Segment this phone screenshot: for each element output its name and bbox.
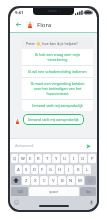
button[interactable]: U	[61, 154, 69, 163]
button[interactable]: H	[56, 165, 64, 174]
staticText: F	[41, 167, 44, 173]
button[interactable]: A	[15, 165, 22, 174]
staticText: U	[63, 156, 67, 162]
button[interactable]: Go	[80, 187, 96, 196]
staticText: space	[49, 189, 59, 194]
button[interactable]: T	[43, 154, 51, 163]
button[interactable]: Emoji	[13, 199, 19, 205]
staticText: T	[46, 156, 49, 162]
staticText: Flora	[37, 21, 52, 29]
staticText: J	[68, 167, 70, 173]
button[interactable]: Z	[22, 176, 30, 185]
staticText: C	[43, 178, 46, 184]
staticText: E	[29, 156, 32, 162]
staticText: A	[17, 167, 20, 173]
button[interactable]: Q	[11, 154, 18, 163]
staticText: H	[58, 167, 62, 173]
staticText: 123	[17, 189, 23, 194]
button[interactable]: W	[19, 154, 26, 163]
button[interactable]: X	[31, 176, 39, 185]
button[interactable]: Y	[52, 154, 60, 163]
staticText: B	[61, 178, 64, 184]
staticText: V	[52, 178, 55, 184]
staticText: P	[91, 156, 94, 162]
button[interactable]: C	[40, 176, 48, 185]
staticText: N	[69, 178, 73, 184]
button[interactable]: R	[35, 154, 42, 163]
staticText: Q	[13, 156, 17, 162]
button[interactable]: Dictate	[88, 199, 94, 205]
button[interactable]: space	[29, 187, 79, 196]
button[interactable]: Shift	[11, 176, 21, 185]
staticText: Y	[55, 156, 58, 162]
button[interactable]: Iemand stelt mij aansprakelijk	[22, 100, 93, 111]
staticText: K	[77, 167, 80, 173]
button[interactable]: M	[76, 176, 84, 185]
button[interactable]: E	[27, 154, 34, 163]
button[interactable]: J	[65, 165, 73, 174]
button[interactable]: B	[58, 176, 66, 185]
staticText: I	[73, 156, 75, 162]
button[interactable]: N	[67, 176, 75, 185]
staticText: Antwoord	[15, 143, 84, 148]
staticText: Ik heb een vraag over mijn verzekering	[35, 52, 80, 62]
staticText: Iemand stelt mij aansprakelijk	[28, 117, 79, 122]
button[interactable]: K	[74, 165, 82, 174]
button[interactable]: P	[88, 154, 96, 163]
staticText: Iemand stelt mij aansprakelijk	[32, 103, 83, 108]
staticText: Z	[25, 178, 28, 184]
staticText: L	[86, 167, 89, 173]
button[interactable]: 123	[11, 187, 28, 196]
button[interactable]: G	[47, 165, 55, 174]
button[interactable]: F	[39, 165, 46, 174]
staticText: S	[25, 167, 28, 173]
button[interactable]: L	[83, 165, 91, 174]
staticText: Peter 👋, hoe kan ik je helpen?	[26, 41, 78, 46]
button[interactable]: V	[49, 176, 57, 185]
staticText: D	[33, 167, 37, 173]
staticText: X	[34, 178, 37, 184]
button[interactable]: I	[70, 154, 78, 163]
staticText: R	[37, 156, 40, 162]
staticText: O	[81, 156, 85, 162]
staticText: 9:41	[15, 10, 24, 16]
button[interactable]: Ik wil een schademelding indienen	[22, 66, 93, 77]
button[interactable]: S	[23, 165, 30, 174]
staticText: W	[21, 156, 25, 162]
button[interactable]: Ik moet een vergoeding betalen voor het …	[22, 78, 93, 99]
button[interactable]: Send	[84, 142, 92, 150]
button[interactable]: D	[31, 165, 38, 174]
staticText: Ik moet een vergoeding betalen voor het …	[30, 81, 85, 96]
staticText: Ik wil een schademelding indienen	[28, 69, 87, 74]
button[interactable]: Ik heb een vraag over mijn verzekering	[22, 49, 93, 65]
staticText: Go	[86, 189, 91, 194]
staticText: M	[78, 178, 82, 184]
button[interactable]: Back	[14, 20, 23, 29]
staticText: G	[49, 167, 53, 173]
button[interactable]: Backspace	[85, 176, 96, 185]
button[interactable]: O	[79, 154, 87, 163]
